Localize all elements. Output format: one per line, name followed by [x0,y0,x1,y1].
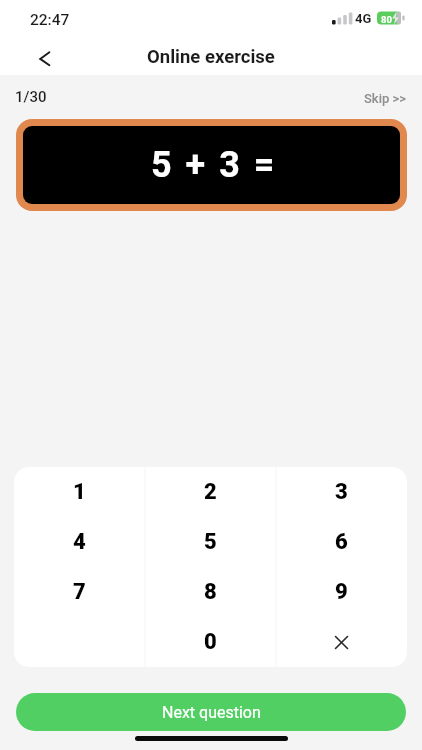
staticText: 9 [335,579,348,605]
button[interactable]: 9 [276,567,407,617]
button[interactable] [31,43,61,73]
button[interactable]: 0 [145,617,276,667]
staticText: Skip >> [364,91,407,106]
button[interactable]: Next question [16,693,406,731]
button[interactable]: 4 [14,517,145,567]
staticText: 0 [204,629,217,655]
staticText: 1/30 [15,88,47,106]
staticText: 5 [204,529,217,555]
staticText: 8 [204,579,217,605]
staticText: 4 [73,529,86,555]
staticText: 7 [73,579,86,605]
button[interactable]: 1 [14,467,145,517]
staticText: 5 + 3 = [151,144,277,186]
staticText: Next question [162,703,261,722]
staticText: 6 [335,529,348,555]
staticText: Online exercise [147,46,275,68]
button[interactable]: 5 [145,517,276,567]
staticText: 22:47 [30,11,70,29]
staticText: 1 [73,479,86,505]
button[interactable]: 6 [276,517,407,567]
button[interactable]: 2 [145,467,276,517]
staticText: 80 [381,14,392,25]
button[interactable]: Skip >> [350,88,407,108]
staticText: 2 [204,479,217,505]
button[interactable]: 7 [14,567,145,617]
button[interactable] [276,617,407,667]
button[interactable]: 3 [276,467,407,517]
staticText: 3 [335,479,348,505]
button[interactable]: 8 [145,567,276,617]
staticText: 4G [355,11,372,26]
